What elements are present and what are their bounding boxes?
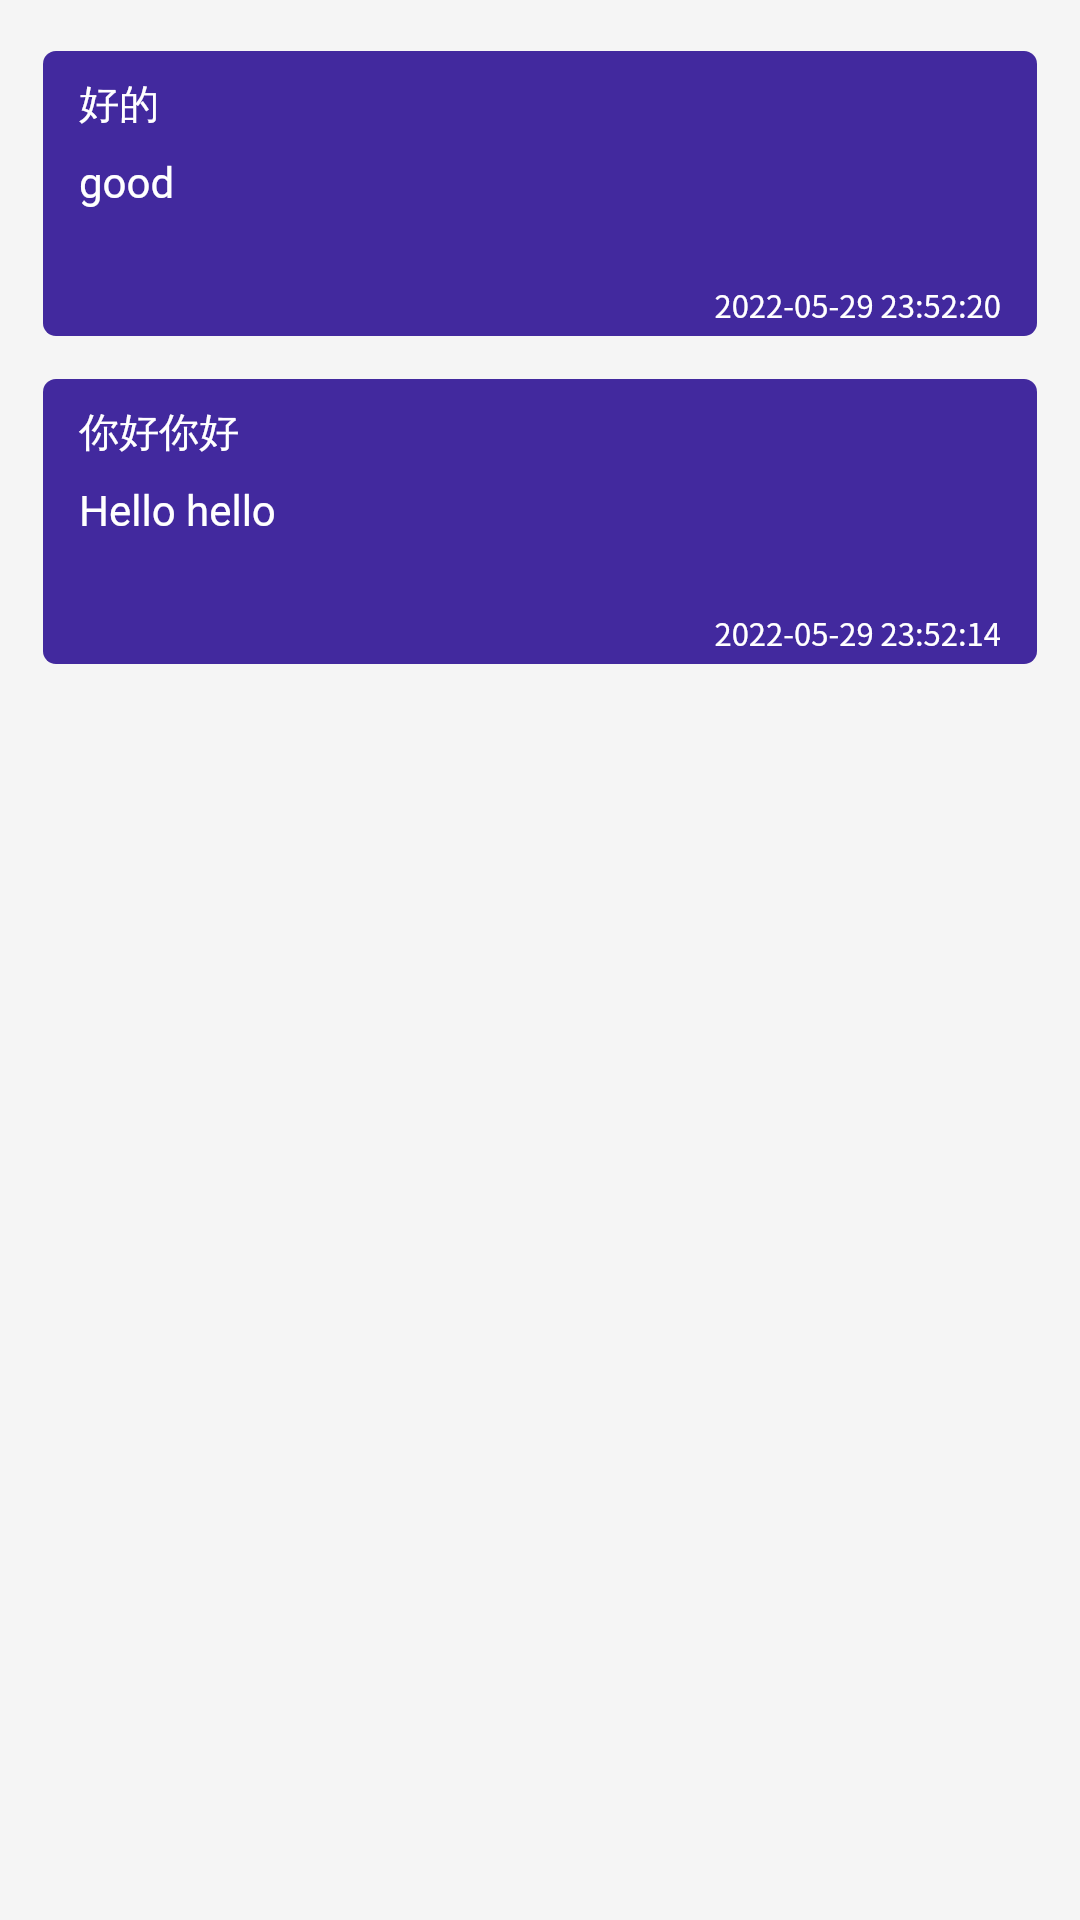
staticText: 2022-05-29 23:52:20 bbox=[43, 282, 1001, 327]
staticText: Hello hello bbox=[79, 487, 276, 536]
button[interactable]: 好的 bbox=[43, 51, 1037, 336]
staticText: 你好你好 bbox=[79, 407, 239, 457]
staticText: 好的 bbox=[79, 79, 159, 129]
staticText: good bbox=[79, 159, 175, 208]
button[interactable]: 你好你好 bbox=[43, 379, 1037, 664]
staticText: 2022-05-29 23:52:14 bbox=[43, 610, 1001, 655]
